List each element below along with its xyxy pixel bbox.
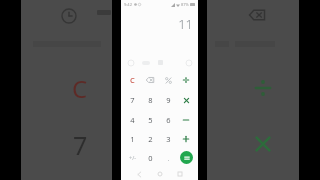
staticText: C	[130, 75, 135, 85]
button[interactable]: History	[127, 59, 134, 66]
staticText: 8	[148, 95, 153, 105]
staticText: 7	[130, 95, 135, 105]
staticText: C	[72, 72, 88, 105]
staticText: 7	[73, 128, 88, 162]
staticText: 2	[148, 134, 153, 144]
staticText: 9:42	[124, 2, 132, 7]
button[interactable]: Equals	[180, 151, 193, 164]
button[interactable]: +/-	[124, 148, 141, 167]
button[interactable]: Backspace	[141, 70, 159, 90]
button[interactable]: Degrees	[141, 59, 150, 66]
staticText: 0	[148, 153, 153, 163]
button[interactable]: Back	[136, 171, 142, 177]
button[interactable]: 1	[124, 129, 141, 148]
button[interactable]: Home	[157, 171, 163, 177]
button[interactable]: Percent	[159, 70, 177, 90]
button[interactable]: 0	[141, 148, 159, 167]
button[interactable]: 6	[159, 110, 177, 129]
button[interactable]: C	[21, 0, 112, 180]
button[interactable]: 3	[159, 129, 177, 148]
button[interactable]: Recent apps	[177, 171, 183, 177]
staticText: 3	[166, 134, 171, 144]
button[interactable]: Minus	[177, 110, 195, 129]
staticText: 6	[166, 115, 171, 125]
staticText: 4	[130, 115, 135, 125]
button[interactable]: 9	[159, 90, 177, 110]
staticText: +/-	[129, 154, 136, 161]
button[interactable]: Scientific	[157, 59, 164, 66]
button[interactable]: 4	[124, 110, 141, 129]
button[interactable]: Plus	[177, 129, 195, 148]
staticText: 1	[130, 134, 135, 144]
button[interactable]: Multiply	[177, 90, 195, 110]
staticText: 11	[178, 15, 193, 33]
button[interactable]: 5	[141, 110, 159, 129]
staticText: 87%	[181, 2, 189, 7]
button[interactable]: 7	[124, 90, 141, 110]
button[interactable]: More options	[185, 59, 192, 66]
button[interactable]: C	[124, 70, 141, 90]
staticText: 9	[166, 95, 171, 105]
button[interactable]: 2	[141, 129, 159, 148]
staticText: 5	[148, 115, 153, 125]
staticText: .	[167, 153, 170, 163]
button[interactable]: 8	[141, 90, 159, 110]
button[interactable]	[207, 0, 299, 180]
button[interactable]: Divide	[177, 70, 195, 90]
